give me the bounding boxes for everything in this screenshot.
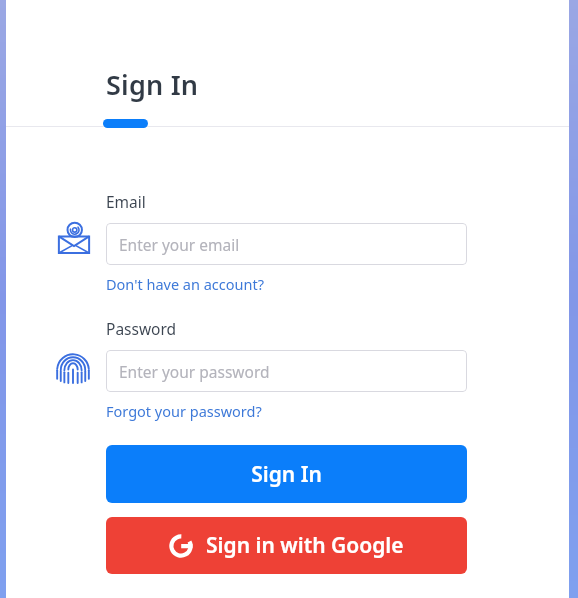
staticText: Sign in with Google	[206, 531, 404, 560]
button[interactable]: Enter your email	[106, 223, 467, 265]
staticText: Email	[106, 191, 146, 212]
button[interactable]: Email	[56, 222, 92, 258]
button[interactable]: Fingerprint login	[55, 350, 91, 386]
button[interactable]: Sign in with Google	[106, 517, 467, 574]
staticText: Password	[106, 318, 177, 339]
staticText: Don't have an account?	[106, 274, 264, 294]
button[interactable]: Sign In	[106, 445, 467, 503]
staticText: Enter your password	[119, 361, 270, 382]
staticText: Forgot your password?	[106, 401, 262, 421]
staticText: Sign In	[251, 460, 322, 489]
button[interactable]: Forgot your password?	[106, 401, 262, 421]
staticText: Sign In	[106, 66, 199, 103]
staticText: Enter your email	[119, 234, 240, 255]
button[interactable]: Enter your password	[106, 350, 467, 392]
button[interactable]: Don't have an account?	[106, 274, 264, 294]
button[interactable]	[103, 119, 148, 128]
